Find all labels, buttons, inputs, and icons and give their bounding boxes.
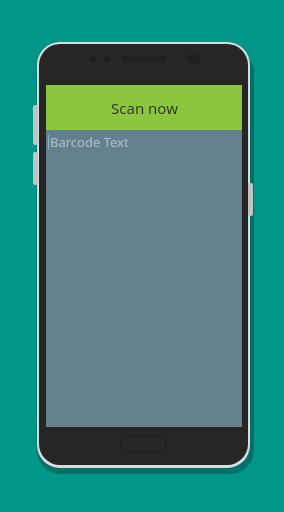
button[interactable]: Power <box>248 183 253 216</box>
button[interactable]: Barcode Text <box>46 130 242 427</box>
staticText: Scan now <box>111 98 178 118</box>
button[interactable]: Scan now <box>46 85 242 130</box>
button[interactable]: Volume up <box>33 105 38 145</box>
button[interactable]: Volume down <box>33 152 38 185</box>
staticText: Barcode Text <box>50 133 129 151</box>
